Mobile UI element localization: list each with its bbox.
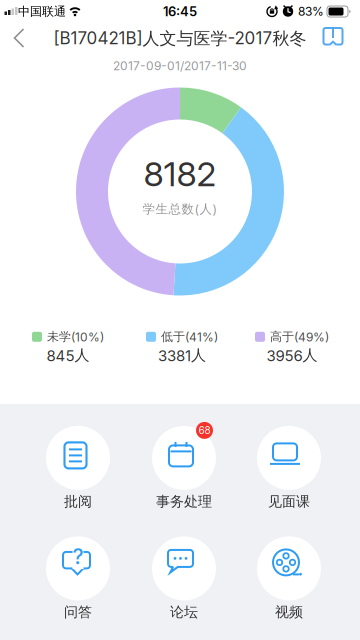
button[interactable]: ? <box>25 536 131 621</box>
button[interactable]: 批阅 <box>25 426 131 510</box>
staticText: 低于(41%) <box>161 329 218 344</box>
staticText: 845人 <box>46 346 89 365</box>
button[interactable]: Back <box>0 22 33 55</box>
staticText: 事务处理 <box>156 493 212 510</box>
staticText: 问答 <box>64 603 92 621</box>
button[interactable]: 68 <box>131 426 237 510</box>
staticText: 论坛 <box>170 603 198 621</box>
staticText: 68 <box>198 424 210 436</box>
button[interactable]: Course materials <box>316 20 349 53</box>
button[interactable]: 论坛 <box>131 536 237 621</box>
staticText: 学生总数(人) <box>142 201 217 217</box>
button[interactable]: 见面课 <box>236 426 342 510</box>
staticText: ? <box>72 544 83 569</box>
staticText: 83% <box>298 4 324 19</box>
staticText: 视频 <box>275 603 303 621</box>
staticText: [B170421B]人文与医学-2017秋冬 <box>53 28 306 49</box>
staticText: 3956人 <box>266 346 317 365</box>
staticText: 见面课 <box>268 493 310 510</box>
staticText: 8182 <box>143 154 216 194</box>
staticText: 批阅 <box>64 493 92 510</box>
button[interactable]: 视频 <box>236 536 342 621</box>
staticText: 未学(10%) <box>47 329 104 344</box>
staticText: 16:45 <box>163 4 197 19</box>
staticText: 2017-09-01/2017-11-30 <box>113 59 247 73</box>
staticText: 高于(49%) <box>270 329 329 344</box>
staticText: 3381人 <box>158 346 206 365</box>
staticText: 中国联通 <box>18 4 66 19</box>
